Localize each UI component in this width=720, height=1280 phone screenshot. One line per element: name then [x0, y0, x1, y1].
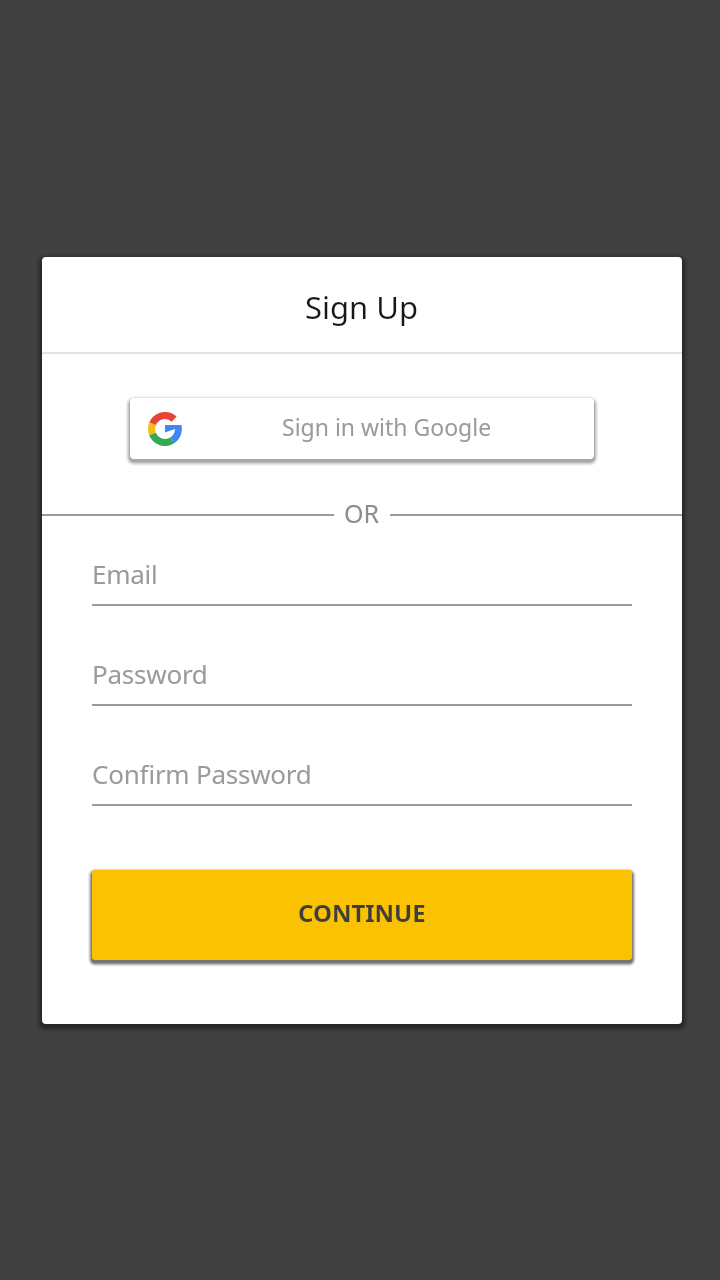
staticText: Email: [92, 556, 158, 591]
staticText: Sign Up: [305, 286, 419, 328]
button[interactable]: Google logo: [130, 398, 594, 459]
button[interactable]: Password: [92, 652, 632, 706]
button[interactable]: Confirm Password: [92, 752, 632, 806]
staticText: OR: [344, 496, 380, 530]
staticText: CONTINUE: [298, 896, 426, 929]
other: Google logo: [148, 412, 182, 446]
button[interactable]: Email: [92, 552, 632, 606]
button[interactable]: CONTINUE: [92, 870, 632, 960]
staticText: Sign in with Google: [282, 411, 492, 442]
staticText: Confirm Password: [92, 756, 312, 791]
staticText: Password: [92, 656, 208, 691]
